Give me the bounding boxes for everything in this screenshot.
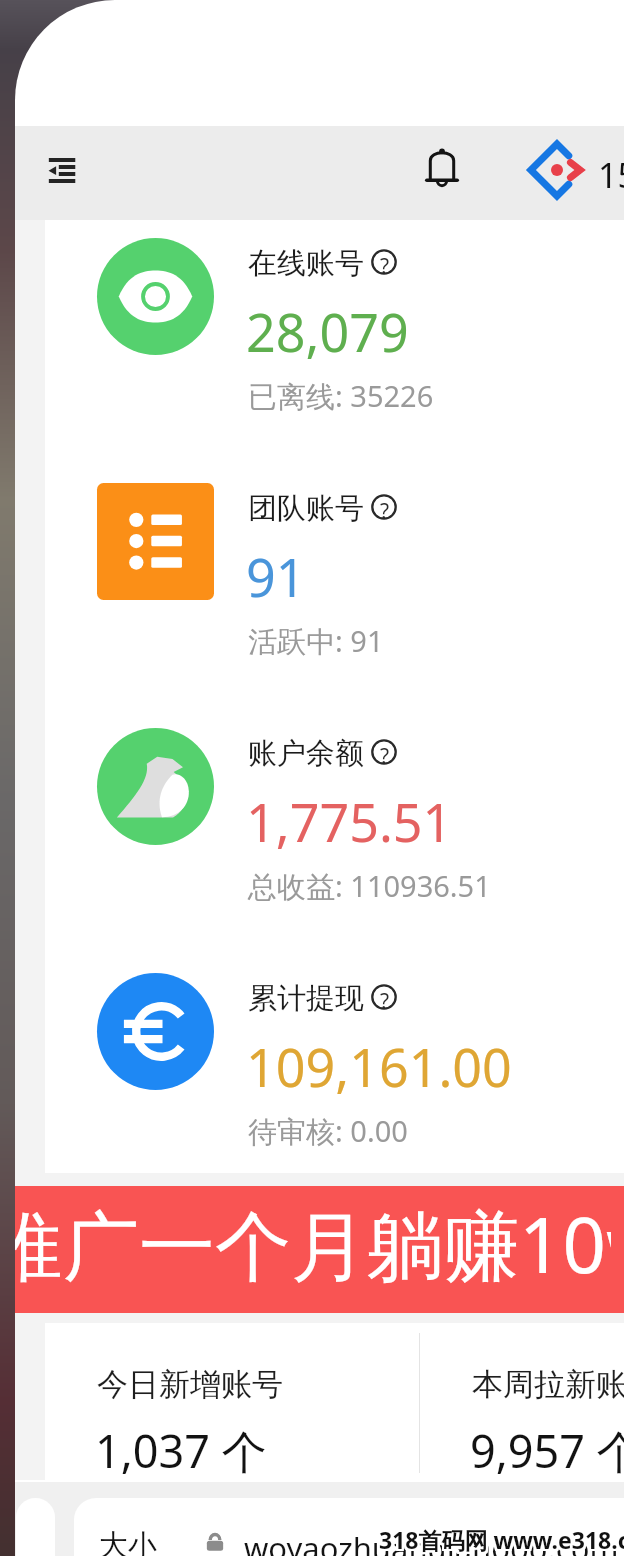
staticText: ? bbox=[380, 742, 390, 768]
staticText: 109,161.00 bbox=[246, 1031, 512, 1102]
staticText: 累计提现 bbox=[248, 980, 364, 1017]
staticText: 待审核: 0.00 bbox=[248, 1111, 408, 1151]
staticText: 318首码网 www.e318.com- bbox=[379, 1524, 624, 1555]
staticText: 91 bbox=[246, 541, 306, 612]
staticText: woyaozhuandianooo.com bbox=[244, 1527, 619, 1556]
staticText: 活跃中: 91 bbox=[248, 621, 384, 661]
button[interactable]: Notifications bbox=[416, 142, 468, 194]
staticText: 318首码网 www.e318.com- bbox=[381, 1526, 624, 1556]
button[interactable]: 累计提现 bbox=[45, 955, 624, 1200]
staticText: 总收益: 110936.51 bbox=[248, 866, 491, 906]
button[interactable]: 今日新增账号 bbox=[97, 1323, 427, 1480]
staticText: ? bbox=[380, 497, 390, 523]
staticText: 已离线: 35226 bbox=[248, 376, 434, 416]
button[interactable]: App logo bbox=[527, 140, 587, 200]
staticText: 318首码网 www.e318.com- bbox=[379, 1524, 624, 1555]
staticText: 今日新增账号 bbox=[97, 1365, 283, 1404]
staticText: 9,957 个 bbox=[470, 1420, 624, 1481]
staticText: 在线账号 bbox=[248, 245, 364, 282]
staticText: 318首码网 www.e318.com- bbox=[381, 1522, 624, 1553]
staticText: 账户余额 bbox=[248, 735, 364, 772]
button[interactable]: 在线账号 bbox=[45, 220, 624, 465]
staticText: 318首码网 www.e318.com- bbox=[377, 1526, 624, 1556]
staticText: 大小 bbox=[99, 1527, 157, 1556]
staticText: 团队账号 bbox=[248, 490, 364, 527]
button[interactable]: 团队账号 bbox=[45, 465, 624, 710]
button[interactable]: 大小 bbox=[74, 1498, 624, 1556]
button[interactable]: Menu bbox=[34, 144, 90, 200]
button[interactable]: Previous tab bbox=[16, 1498, 55, 1556]
staticText: 28,079 bbox=[246, 296, 409, 367]
staticText: 318首码网 www.e318.com- bbox=[381, 1524, 624, 1555]
staticText: 1,775.51 bbox=[246, 786, 453, 857]
staticText: 318首码网 www.e318.com- bbox=[377, 1522, 624, 1553]
staticText: 1,037 个 bbox=[95, 1420, 267, 1481]
staticText: 318首码网 www.e318.com- bbox=[379, 1526, 624, 1556]
staticText: 推广一个月躺赚10w bbox=[15, 1192, 611, 1296]
staticText: ? bbox=[380, 987, 390, 1013]
staticText: 15 bbox=[598, 152, 624, 198]
button[interactable]: 本周拉新账号 bbox=[472, 1323, 624, 1480]
staticText: 本周拉新账号 bbox=[472, 1365, 624, 1404]
staticText: ? bbox=[380, 252, 390, 278]
staticText: 318首码网 www.e318.com- bbox=[377, 1524, 624, 1555]
button[interactable]: 账户余额 bbox=[45, 710, 624, 955]
staticText: 318首码网 www.e318.com- bbox=[379, 1522, 624, 1553]
